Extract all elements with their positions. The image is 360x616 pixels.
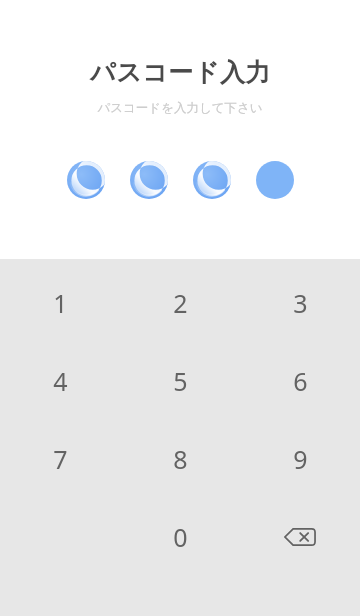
staticText: 8 xyxy=(173,442,188,476)
button[interactable]: 0 xyxy=(120,498,240,576)
button[interactable]: Delete xyxy=(240,498,360,576)
button[interactable]: 2 xyxy=(120,264,240,342)
button[interactable]: 9 xyxy=(240,420,360,498)
button[interactable]: 7 xyxy=(0,420,120,498)
staticText: 4 xyxy=(53,364,68,398)
staticText: パスコード入力 xyxy=(90,57,271,88)
staticText: 3 xyxy=(293,286,308,320)
staticText: 6 xyxy=(293,364,308,398)
button[interactable]: 5 xyxy=(120,342,240,420)
staticText: 5 xyxy=(173,364,188,398)
staticText: 0 xyxy=(173,520,188,554)
staticText: 9 xyxy=(293,442,308,476)
button[interactable]: 6 xyxy=(240,342,360,420)
staticText: 1 xyxy=(53,286,68,320)
button[interactable]: 4 xyxy=(0,342,120,420)
button[interactable]: 3 xyxy=(240,264,360,342)
button[interactable]: 8 xyxy=(120,420,240,498)
button[interactable]: 1 xyxy=(0,264,120,342)
staticText: 7 xyxy=(53,442,68,476)
staticText: 2 xyxy=(173,286,188,320)
staticText: パスコードを入力して下さい xyxy=(97,100,263,116)
